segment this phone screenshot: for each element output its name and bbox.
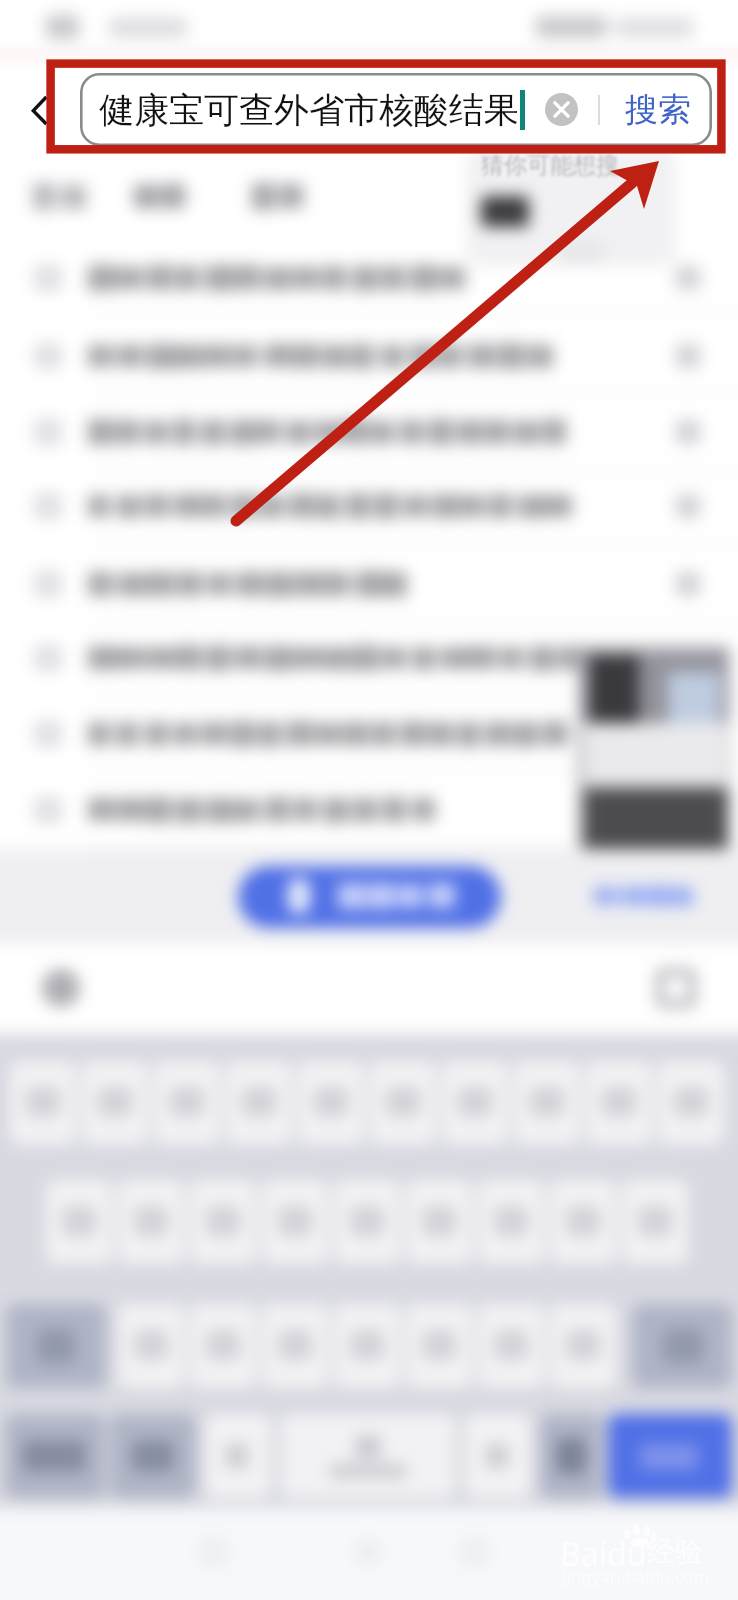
button[interactable]: 健康宝可查外省市核酸结果: [80, 73, 712, 146]
staticText: 猜你可能想搜: [481, 151, 619, 180]
button[interactable]: Clear text: [545, 93, 578, 126]
staticText: 健康宝可查外省市核酸结果: [99, 88, 519, 132]
button[interactable]: 搜索: [614, 73, 702, 146]
staticText: 搜索: [625, 89, 691, 131]
button[interactable]: Back: [8, 76, 72, 144]
